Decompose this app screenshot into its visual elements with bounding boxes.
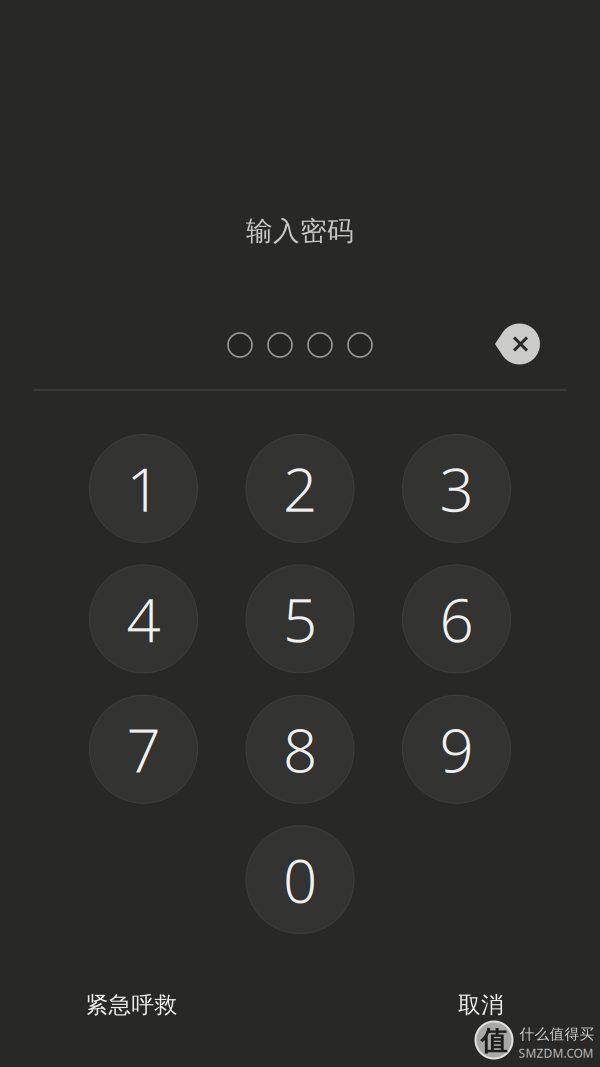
staticText: 什么值得买 — [519, 1025, 594, 1043]
button[interactable]: 4 — [89, 565, 197, 673]
staticText: 1 — [126, 449, 160, 528]
button[interactable]: 9 — [402, 695, 510, 803]
staticText: 8 — [283, 709, 317, 789]
button[interactable]: 7 — [89, 695, 197, 803]
button[interactable]: 6 — [402, 565, 510, 673]
staticText: 9 — [439, 709, 473, 789]
button[interactable]: 5 — [246, 565, 354, 673]
staticText: 紧急呼救 — [85, 991, 177, 1019]
staticText: 6 — [439, 579, 473, 659]
button[interactable]: 2 — [246, 434, 354, 542]
staticText: 值 — [480, 1025, 507, 1057]
button[interactable]: 3 — [402, 434, 510, 542]
staticText: 0 — [283, 840, 317, 920]
button[interactable]: 0 — [246, 826, 354, 934]
button[interactable]: 取消 — [450, 983, 512, 1027]
staticText: 3 — [439, 449, 473, 528]
staticText: 5 — [283, 579, 317, 659]
staticText: 输入密码 — [246, 215, 354, 247]
button[interactable]: Delete — [485, 317, 549, 371]
staticText: 2 — [283, 449, 317, 528]
staticText: 4 — [126, 579, 160, 659]
staticText: 7 — [126, 709, 160, 789]
button[interactable]: 8 — [246, 695, 354, 803]
button[interactable]: 1 — [89, 434, 197, 542]
button[interactable]: 紧急呼救 — [77, 983, 185, 1027]
staticText: 取消 — [458, 991, 504, 1019]
staticText: SMZDM.COM — [518, 1045, 593, 1061]
